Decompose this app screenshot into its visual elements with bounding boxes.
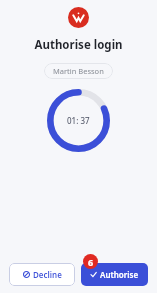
staticText: 01: 37 — [67, 115, 90, 126]
button[interactable]: Martin Besson — [44, 63, 113, 79]
staticText: Authorise — [100, 269, 139, 280]
staticText: Martin Besson — [53, 66, 104, 76]
button[interactable]: Authorise — [81, 263, 148, 286]
staticText: Decline — [33, 269, 62, 280]
staticText: Authorise login — [34, 37, 123, 53]
staticText: 6 — [88, 256, 94, 268]
button[interactable]: Decline — [9, 263, 75, 286]
other: 6 pending requests — [83, 254, 98, 269]
